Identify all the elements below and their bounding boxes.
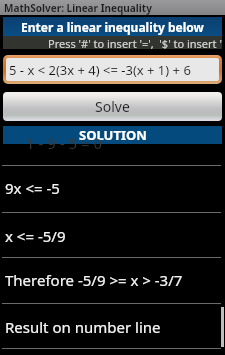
staticText: Result on number line <box>5 317 161 337</box>
staticText: Solve <box>95 97 130 116</box>
staticText: SOLUTION <box>79 126 147 144</box>
staticText: x <= -5/9 <box>5 226 66 246</box>
button[interactable]: Solve <box>3 92 222 121</box>
button[interactable]: x <= -5/9 <box>0 213 225 257</box>
staticText: MathSolver: Linear Inequality <box>4 1 152 15</box>
button[interactable]: Result on number line <box>0 304 225 348</box>
button[interactable]: 9x <= -5 <box>0 166 225 212</box>
staticText: Enter a linear inequality below <box>21 19 204 35</box>
button[interactable]: 1 - 9 - 5 = 0 <box>0 144 225 165</box>
staticText: 9x <= -5 <box>5 178 60 198</box>
staticText: 5 - x < 2(3x + 4) <= -3(x + 1) + 6 <box>9 61 191 79</box>
staticText: Therefore -5/9 >= x > -3/7 <box>5 270 183 290</box>
button[interactable]: Therefore -5/9 >= x > -3/7 <box>0 258 225 303</box>
staticText: 1 - 9 - 5 = 0 <box>26 133 102 153</box>
staticText: Press '#' to insert '=', '$' to insert '… <box>48 36 222 49</box>
